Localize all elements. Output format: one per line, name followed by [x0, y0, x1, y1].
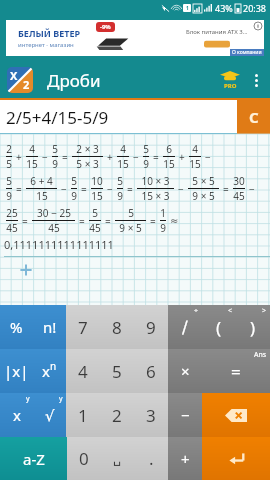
button[interactable]: C	[237, 100, 270, 134]
staticText: 5	[6, 157, 12, 171]
staticText: =	[127, 182, 133, 196]
staticText: −	[133, 150, 139, 164]
button[interactable]: БЕЛЫЙ ВЕТЕР	[6, 20, 264, 56]
staticText: 2/5+4/15-5/9	[6, 106, 109, 129]
staticText: 15	[163, 157, 175, 171]
staticText: 45	[89, 221, 101, 235]
button[interactable]: Add	[18, 262, 34, 278]
button[interactable]: More options	[250, 68, 263, 93]
staticText: 7	[78, 316, 88, 339]
button[interactable]: 6	[134, 349, 168, 393]
button[interactable]: 1	[66, 393, 100, 437]
staticText: ×	[181, 361, 190, 381]
button[interactable]: 9	[134, 305, 168, 349]
button[interactable]: )	[236, 305, 270, 349]
staticText: 45	[233, 189, 245, 203]
staticText: 0	[79, 447, 89, 470]
staticText: 9	[71, 189, 77, 203]
button[interactable]: App icon	[7, 67, 33, 93]
button[interactable]: 0	[67, 437, 100, 480]
staticText: О компании	[232, 49, 262, 56]
staticText: 2 × 3	[76, 142, 99, 156]
staticText: 9	[52, 157, 58, 171]
button[interactable]: =	[202, 349, 270, 393]
button[interactable]: 2	[100, 393, 134, 437]
button[interactable]: −	[168, 393, 202, 437]
button[interactable]: +	[168, 437, 202, 480]
staticText: −	[61, 182, 67, 196]
staticText: .	[149, 447, 154, 470]
staticText: 2	[23, 77, 30, 92]
button[interactable]: Pro version	[216, 71, 244, 90]
button[interactable]: √	[33, 393, 66, 437]
staticText: 30 − 25	[37, 206, 71, 220]
staticText: 6 + 4	[30, 174, 53, 188]
button[interactable]: 2/5+4/15-5/9	[0, 100, 237, 134]
staticText: 15	[91, 189, 103, 203]
staticText: √	[45, 407, 55, 424]
button[interactable]: ␣	[100, 437, 134, 480]
staticText: интернет · магазин	[18, 41, 74, 49]
button[interactable]: ×	[168, 349, 202, 393]
staticText: ≈	[170, 215, 179, 227]
staticText: x	[42, 361, 50, 381]
staticText: =	[153, 150, 159, 164]
staticText: +	[16, 150, 22, 164]
staticText: %	[10, 317, 23, 337]
button[interactable]: 5	[100, 349, 134, 393]
staticText: 4	[78, 360, 88, 383]
staticText: 4	[192, 142, 198, 156]
staticText: 15	[36, 189, 48, 203]
button[interactable]: |x|	[0, 349, 33, 393]
staticText: =	[150, 214, 156, 228]
staticText: −	[178, 182, 184, 196]
staticText: 45	[6, 221, 18, 235]
staticText: n	[50, 359, 57, 373]
staticText: 9	[143, 157, 149, 171]
staticText: 2	[6, 142, 12, 156]
staticText: =	[223, 182, 229, 196]
staticText: n!	[43, 317, 57, 337]
button[interactable]: Backspace	[202, 393, 270, 437]
button[interactable]: x	[33, 349, 66, 393]
staticText: 6	[166, 142, 172, 156]
button[interactable]: .	[134, 437, 168, 480]
button[interactable]: a-Z	[0, 437, 67, 480]
staticText: 1	[160, 206, 166, 220]
staticText: 43%	[215, 2, 233, 14]
staticText: 2	[112, 404, 122, 427]
staticText: 15 × 3	[141, 189, 170, 203]
button[interactable]: %	[0, 305, 33, 349]
staticText: y	[26, 394, 30, 404]
button[interactable]: 7	[66, 305, 100, 349]
staticText: =	[105, 214, 111, 228]
staticText: 10	[91, 174, 103, 188]
button[interactable]: Enter	[202, 437, 270, 480]
staticText: 5	[117, 174, 123, 188]
button[interactable]: ∕	[168, 305, 202, 349]
staticText: 1	[78, 404, 88, 427]
staticText: ÷	[194, 306, 199, 316]
staticText: −	[107, 182, 113, 196]
button[interactable]: n!	[33, 305, 66, 349]
staticText: −	[42, 150, 48, 164]
button[interactable]: 8	[100, 305, 134, 349]
button[interactable]: x	[0, 393, 33, 437]
staticText: =	[62, 150, 68, 164]
staticText: 5	[112, 360, 122, 383]
button[interactable]: 3	[134, 393, 168, 437]
button[interactable]: 4	[66, 349, 100, 393]
staticText: 15	[189, 157, 201, 171]
staticText: a-Z	[23, 449, 45, 469]
staticText: −	[181, 405, 190, 425]
staticText: 5	[52, 142, 58, 156]
staticText: Блок питания ATX 3…	[186, 28, 248, 36]
staticText: 4	[120, 142, 126, 156]
staticText: 25	[6, 206, 18, 220]
staticText: =	[231, 360, 241, 383]
staticText: 5	[128, 206, 134, 220]
staticText: 5 × 5	[192, 174, 215, 188]
button[interactable]: (	[202, 305, 236, 349]
staticText: +	[179, 150, 185, 164]
staticText: <	[228, 306, 233, 316]
